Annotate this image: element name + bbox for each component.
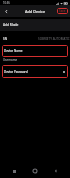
button[interactable]: Show password [61,69,66,74]
staticText: Device Name [4,49,23,53]
button[interactable]: Back [49,164,63,178]
staticText: 10:36 [3,1,10,5]
button[interactable]: Save [57,8,68,14]
staticText: Save [59,9,66,13]
button[interactable]: Recent apps [7,164,21,178]
staticText: Device Password [4,70,28,74]
staticText: Add Device [25,9,46,14]
staticText: SOBRIETY AUTOMATIC [38,37,70,41]
staticText: Username [3,58,18,62]
staticText: SN [3,37,7,41]
button[interactable]: Device Name [2,45,68,57]
button[interactable]: Back [0,5,12,17]
button[interactable]: Device Password [2,65,68,78]
staticText: Add Mode [3,23,19,27]
button[interactable]: Home [28,164,42,178]
